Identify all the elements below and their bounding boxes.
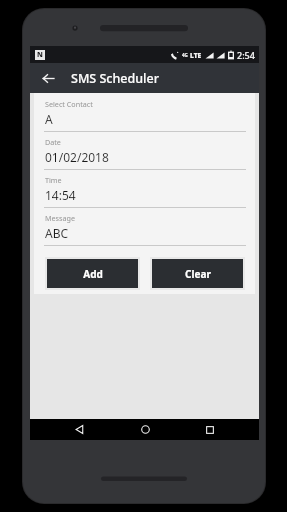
button[interactable]: Home [128,419,162,440]
staticText: Message [45,213,75,223]
staticText: 01/02/2018 [45,149,109,165]
staticText: A [45,111,53,127]
staticText: Time [45,175,62,185]
button[interactable]: Add [47,259,138,288]
button[interactable]: Recent apps [193,419,227,440]
staticText: LTE [190,51,202,60]
staticText: Clear [185,267,211,281]
button[interactable]: Back [62,419,96,440]
staticText: SMS Scheduler [71,70,159,87]
staticText: Select Contact [45,99,93,109]
button[interactable]: Back [36,66,60,90]
staticText: 2:54 [237,49,255,61]
staticText: 4G [182,52,188,58]
staticText: N [37,50,43,60]
staticText: Add [83,267,103,281]
button[interactable]: Clear [152,259,243,288]
staticText: Date [45,137,61,147]
staticText: 14:54 [45,187,76,203]
staticText: ABC [45,225,69,241]
